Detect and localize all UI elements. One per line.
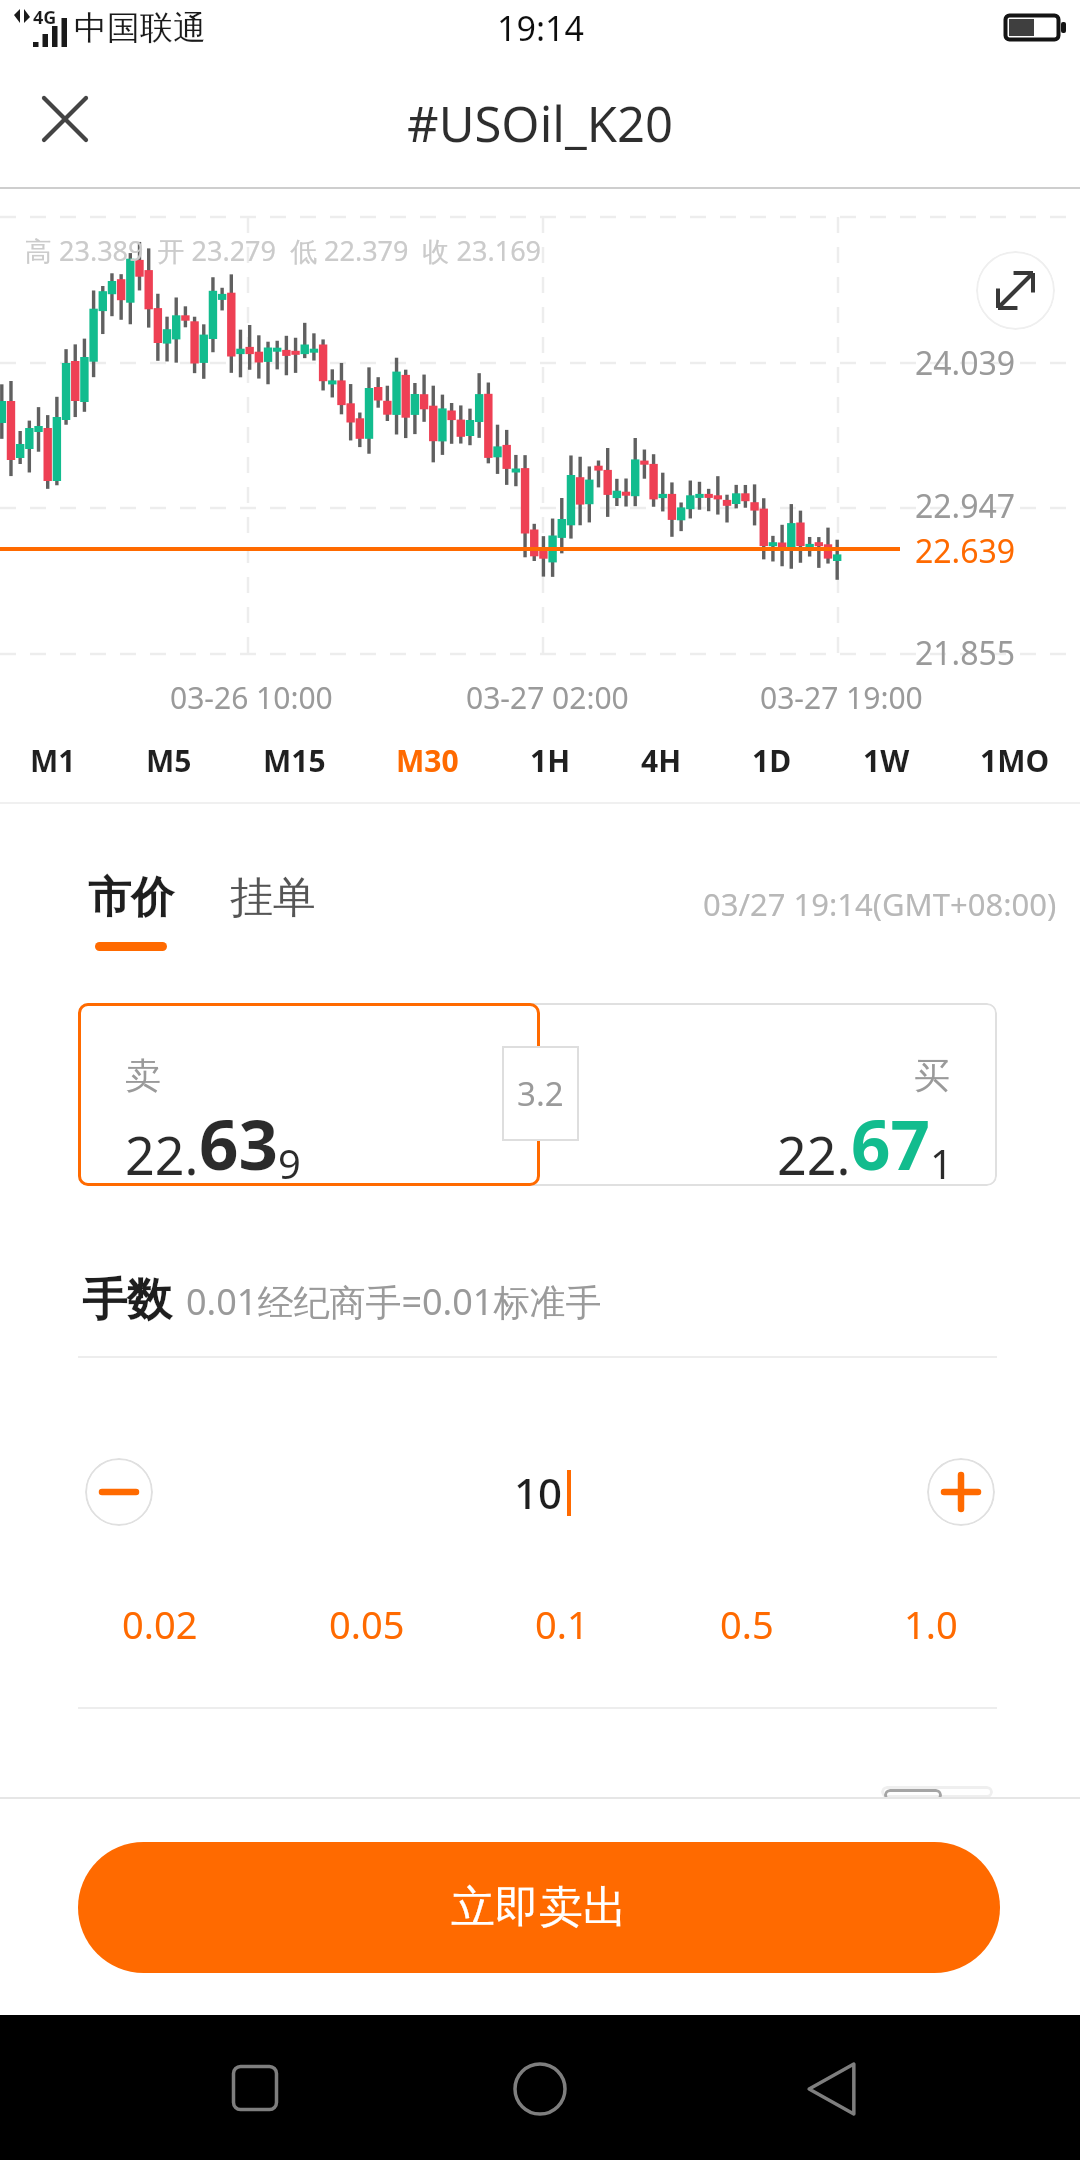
staticText: 0.5	[720, 1598, 774, 1650]
staticText: 22.947	[915, 484, 1016, 528]
button[interactable]: Increase lots	[927, 1458, 995, 1526]
staticText: #USOil_K20	[407, 90, 674, 157]
staticText: 1MO	[980, 740, 1050, 781]
staticText: 1.0	[904, 1598, 958, 1650]
button[interactable]: 0.05	[317, 1590, 417, 1658]
button[interactable]: 卖	[78, 1003, 540, 1186]
staticText: M30	[396, 740, 459, 781]
button[interactable]: 4H	[627, 732, 696, 789]
button[interactable]: 0.5	[708, 1590, 786, 1658]
staticText: M5	[146, 740, 192, 781]
staticText: 9	[278, 1136, 301, 1190]
staticText: 19:14	[497, 5, 584, 51]
button[interactable]: Close	[20, 74, 110, 164]
staticText: 高 23.389 开 23.279 低 22.379 收 23.169	[25, 232, 542, 269]
button[interactable]: M30	[382, 732, 473, 789]
button[interactable]: M5	[132, 732, 206, 789]
button[interactable]: M1	[16, 732, 90, 789]
button[interactable]: M15	[249, 732, 340, 789]
staticText: M1	[30, 740, 76, 781]
staticText: 买	[914, 1053, 950, 1098]
staticText: 3.2	[517, 1071, 564, 1116]
staticText: 1H	[530, 740, 571, 781]
staticText: 0.01经纪商手=0.01标准手	[186, 1277, 602, 1326]
staticText: 挂单	[230, 871, 316, 925]
staticText: 10	[514, 1464, 563, 1521]
staticText: 22.	[777, 1119, 851, 1190]
staticText: 03-26 10:00	[170, 677, 333, 718]
button[interactable]: Home	[513, 2062, 567, 2116]
button[interactable]: 立即卖出	[78, 1842, 1000, 1973]
button[interactable]: 1H	[516, 732, 585, 789]
button[interactable]: Back	[806, 2063, 858, 2115]
staticText: 手数	[82, 1272, 172, 1329]
button[interactable]: Recents	[232, 2065, 278, 2111]
staticText: 67	[851, 1096, 930, 1190]
button[interactable]: Fullscreen	[976, 251, 1055, 330]
staticText: 0.05	[329, 1598, 405, 1650]
staticText: 立即卖出	[451, 1880, 627, 1935]
staticText: 市价	[88, 871, 174, 925]
button[interactable]: 1D	[738, 732, 806, 789]
staticText: 0.1	[535, 1598, 589, 1650]
button[interactable]: 买	[540, 1003, 997, 1186]
staticText: 24.039	[915, 341, 1016, 385]
button[interactable]: 1W	[849, 732, 924, 789]
staticText: 4G	[33, 5, 57, 30]
button[interactable]: Decrease lots	[85, 1458, 153, 1526]
staticText: 03/27 19:14(GMT+08:00)	[703, 883, 1057, 925]
staticText: 1D	[752, 740, 792, 781]
button[interactable]: 市价	[88, 871, 174, 951]
staticText: M15	[263, 740, 326, 781]
staticText: 1W	[863, 740, 910, 781]
staticText: 22.	[125, 1119, 199, 1190]
staticText: 1	[930, 1136, 953, 1190]
staticText: 03-27 02:00	[466, 677, 629, 718]
staticText: 63	[199, 1096, 278, 1190]
staticText: 卖	[125, 1053, 161, 1098]
staticText: 21.855	[915, 631, 1016, 675]
button[interactable]: Toggle setting	[875, 1786, 1000, 1798]
staticText: 0.02	[122, 1598, 198, 1650]
button[interactable]: 1.0	[892, 1590, 970, 1658]
button[interactable]: 挂单	[230, 871, 316, 925]
staticText: 03-27 19:00	[760, 677, 923, 718]
button[interactable]: 1MO	[966, 732, 1064, 789]
button[interactable]: 0.1	[523, 1590, 601, 1658]
staticText: 4H	[641, 740, 682, 781]
staticText: 22.639	[915, 529, 1016, 573]
staticText: 中国联通	[74, 7, 206, 49]
button[interactable]: 0.02	[110, 1590, 210, 1658]
